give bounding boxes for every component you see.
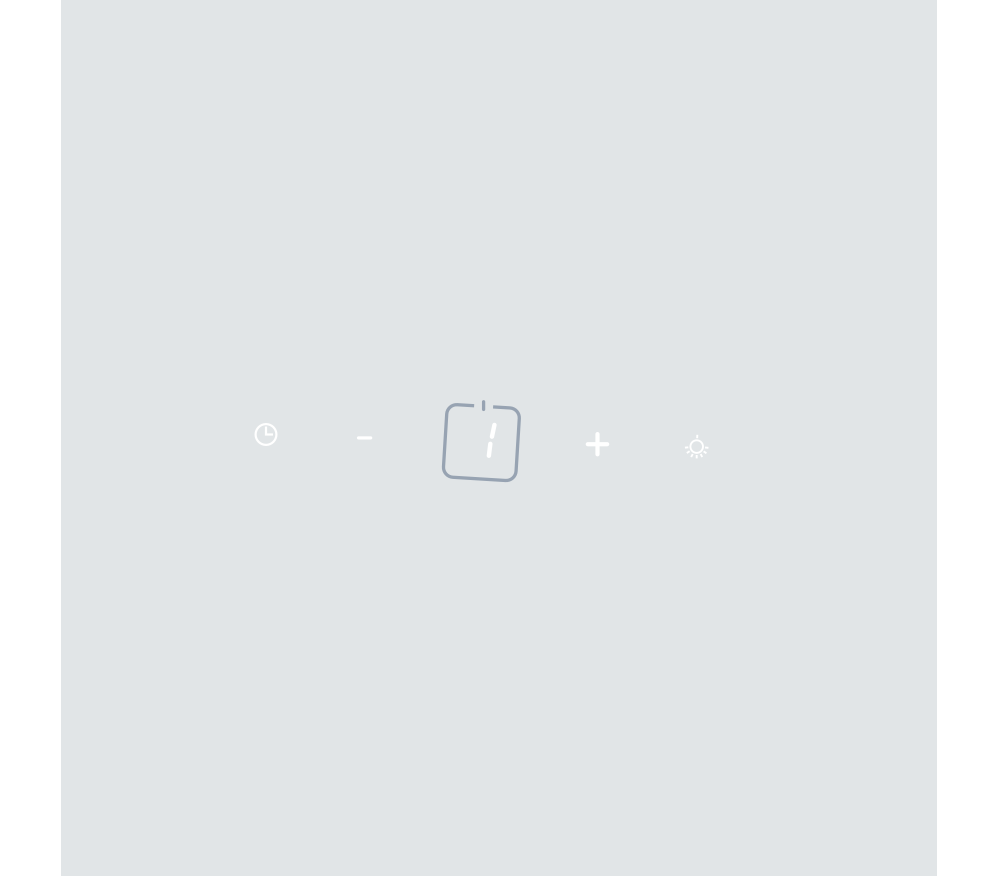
- button[interactable]: Decrease: [343, 416, 387, 460]
- button[interactable]: Brightness: [675, 425, 719, 469]
- button[interactable]: Increase: [575, 422, 619, 466]
- button[interactable]: Recents: [244, 412, 288, 456]
- button[interactable]: Timer: [433, 395, 529, 491]
